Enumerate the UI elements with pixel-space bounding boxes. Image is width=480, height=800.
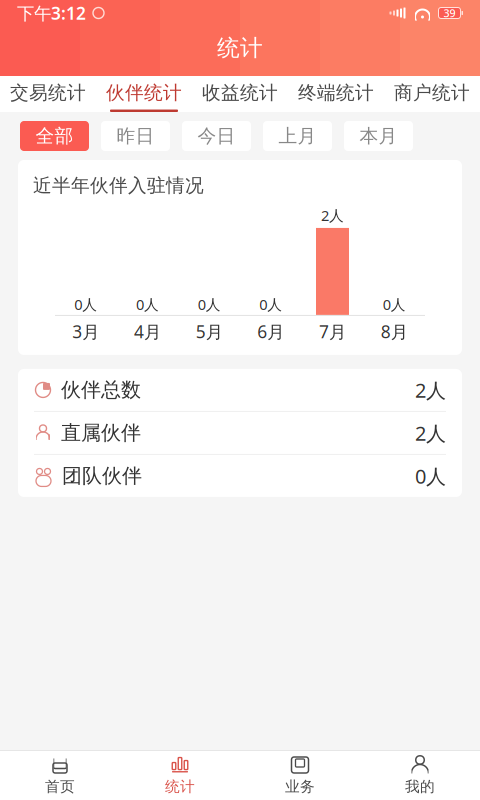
staticText: 统计: [217, 34, 263, 62]
staticText: 0人: [136, 294, 159, 314]
staticText: 0人: [415, 463, 446, 489]
button[interactable]: 伙伴总数: [18, 369, 462, 411]
staticText: 统计: [165, 777, 195, 795]
staticText: 我的: [405, 777, 435, 795]
staticText: 伙伴统计: [106, 81, 182, 104]
staticText: 收益统计: [202, 81, 278, 104]
staticText: 昨日: [116, 124, 154, 147]
staticText: 39: [443, 6, 455, 20]
staticText: 0人: [383, 294, 406, 314]
button[interactable]: 业务: [240, 751, 360, 800]
staticText: 6月: [257, 320, 284, 343]
staticText: 交易统计: [10, 81, 86, 104]
button[interactable]: 昨日: [101, 121, 170, 151]
button[interactable]: 交易统计: [0, 76, 96, 112]
staticText: 0人: [198, 294, 221, 314]
staticText: 全部: [35, 124, 73, 147]
button[interactable]: 今日: [182, 121, 251, 151]
button[interactable]: 首页: [0, 751, 120, 800]
button[interactable]: 终端统计: [288, 76, 384, 112]
staticText: 2人: [321, 205, 344, 225]
staticText: 下午3:12: [17, 1, 86, 24]
staticText: 直属伙伴: [61, 421, 141, 445]
button[interactable]: 商户统计: [384, 76, 480, 112]
button[interactable]: 我的: [360, 751, 480, 800]
button[interactable]: 直属伙伴: [18, 412, 462, 454]
button[interactable]: 本月: [344, 121, 413, 151]
staticText: 7月: [319, 320, 346, 343]
staticText: 商户统计: [394, 81, 470, 104]
staticText: 5月: [196, 320, 223, 343]
button[interactable]: 统计: [120, 751, 240, 800]
staticText: 8月: [381, 320, 408, 343]
staticText: 伙伴总数: [61, 378, 141, 402]
staticText: 首页: [45, 777, 75, 795]
button[interactable]: 上月: [263, 121, 332, 151]
staticText: 业务: [285, 777, 315, 795]
staticText: 上月: [278, 124, 316, 147]
staticText: 0人: [259, 294, 282, 314]
staticText: 团队伙伴: [62, 464, 142, 488]
staticText: 3月: [72, 320, 99, 343]
staticText: 0人: [74, 294, 97, 314]
staticText: 今日: [197, 124, 235, 147]
button[interactable]: 伙伴统计: [96, 76, 192, 112]
button[interactable]: 团队伙伴: [18, 455, 462, 497]
button[interactable]: 全部: [20, 121, 89, 151]
staticText: 本月: [359, 124, 397, 147]
staticText: 2人: [415, 377, 446, 403]
staticText: 近半年伙伴入驻情况: [33, 174, 204, 197]
staticText: 终端统计: [298, 81, 374, 104]
button[interactable]: 收益统计: [192, 76, 288, 112]
staticText: 2人: [415, 420, 446, 446]
staticText: 4月: [134, 320, 161, 343]
